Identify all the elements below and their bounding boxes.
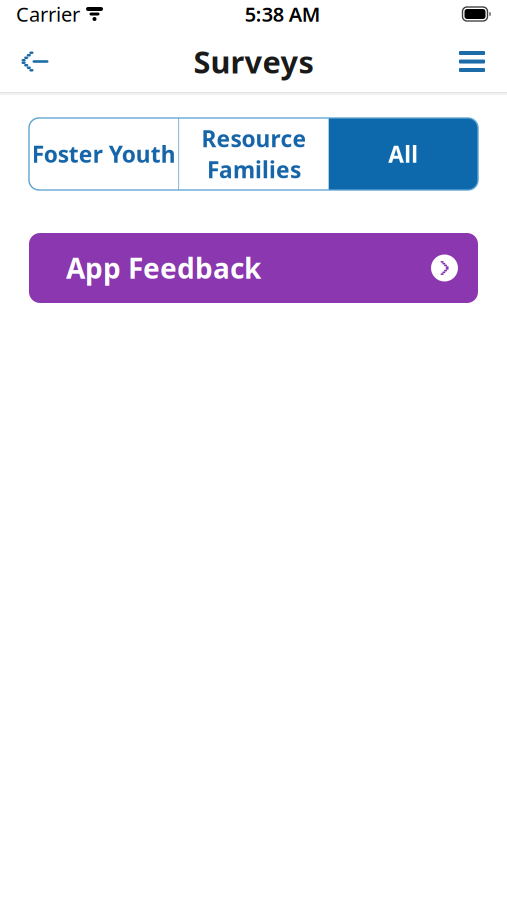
button[interactable]: Menu — [443, 28, 501, 95]
staticText: 5:38 AM — [245, 1, 321, 27]
staticText: Surveys — [193, 41, 313, 82]
staticText: Foster Youth — [32, 139, 176, 169]
staticText: All — [388, 139, 418, 169]
staticText: Resource — [201, 123, 306, 153]
staticText: Carrier — [16, 1, 80, 27]
button[interactable]: App Feedback — [29, 233, 478, 303]
button[interactable]: All — [329, 118, 478, 190]
staticText: App Feedback — [66, 249, 261, 287]
staticText: Families — [207, 154, 301, 185]
button[interactable]: Back — [6, 28, 64, 95]
button[interactable]: Resource — [179, 118, 329, 190]
button[interactable]: Foster Youth — [29, 118, 178, 190]
